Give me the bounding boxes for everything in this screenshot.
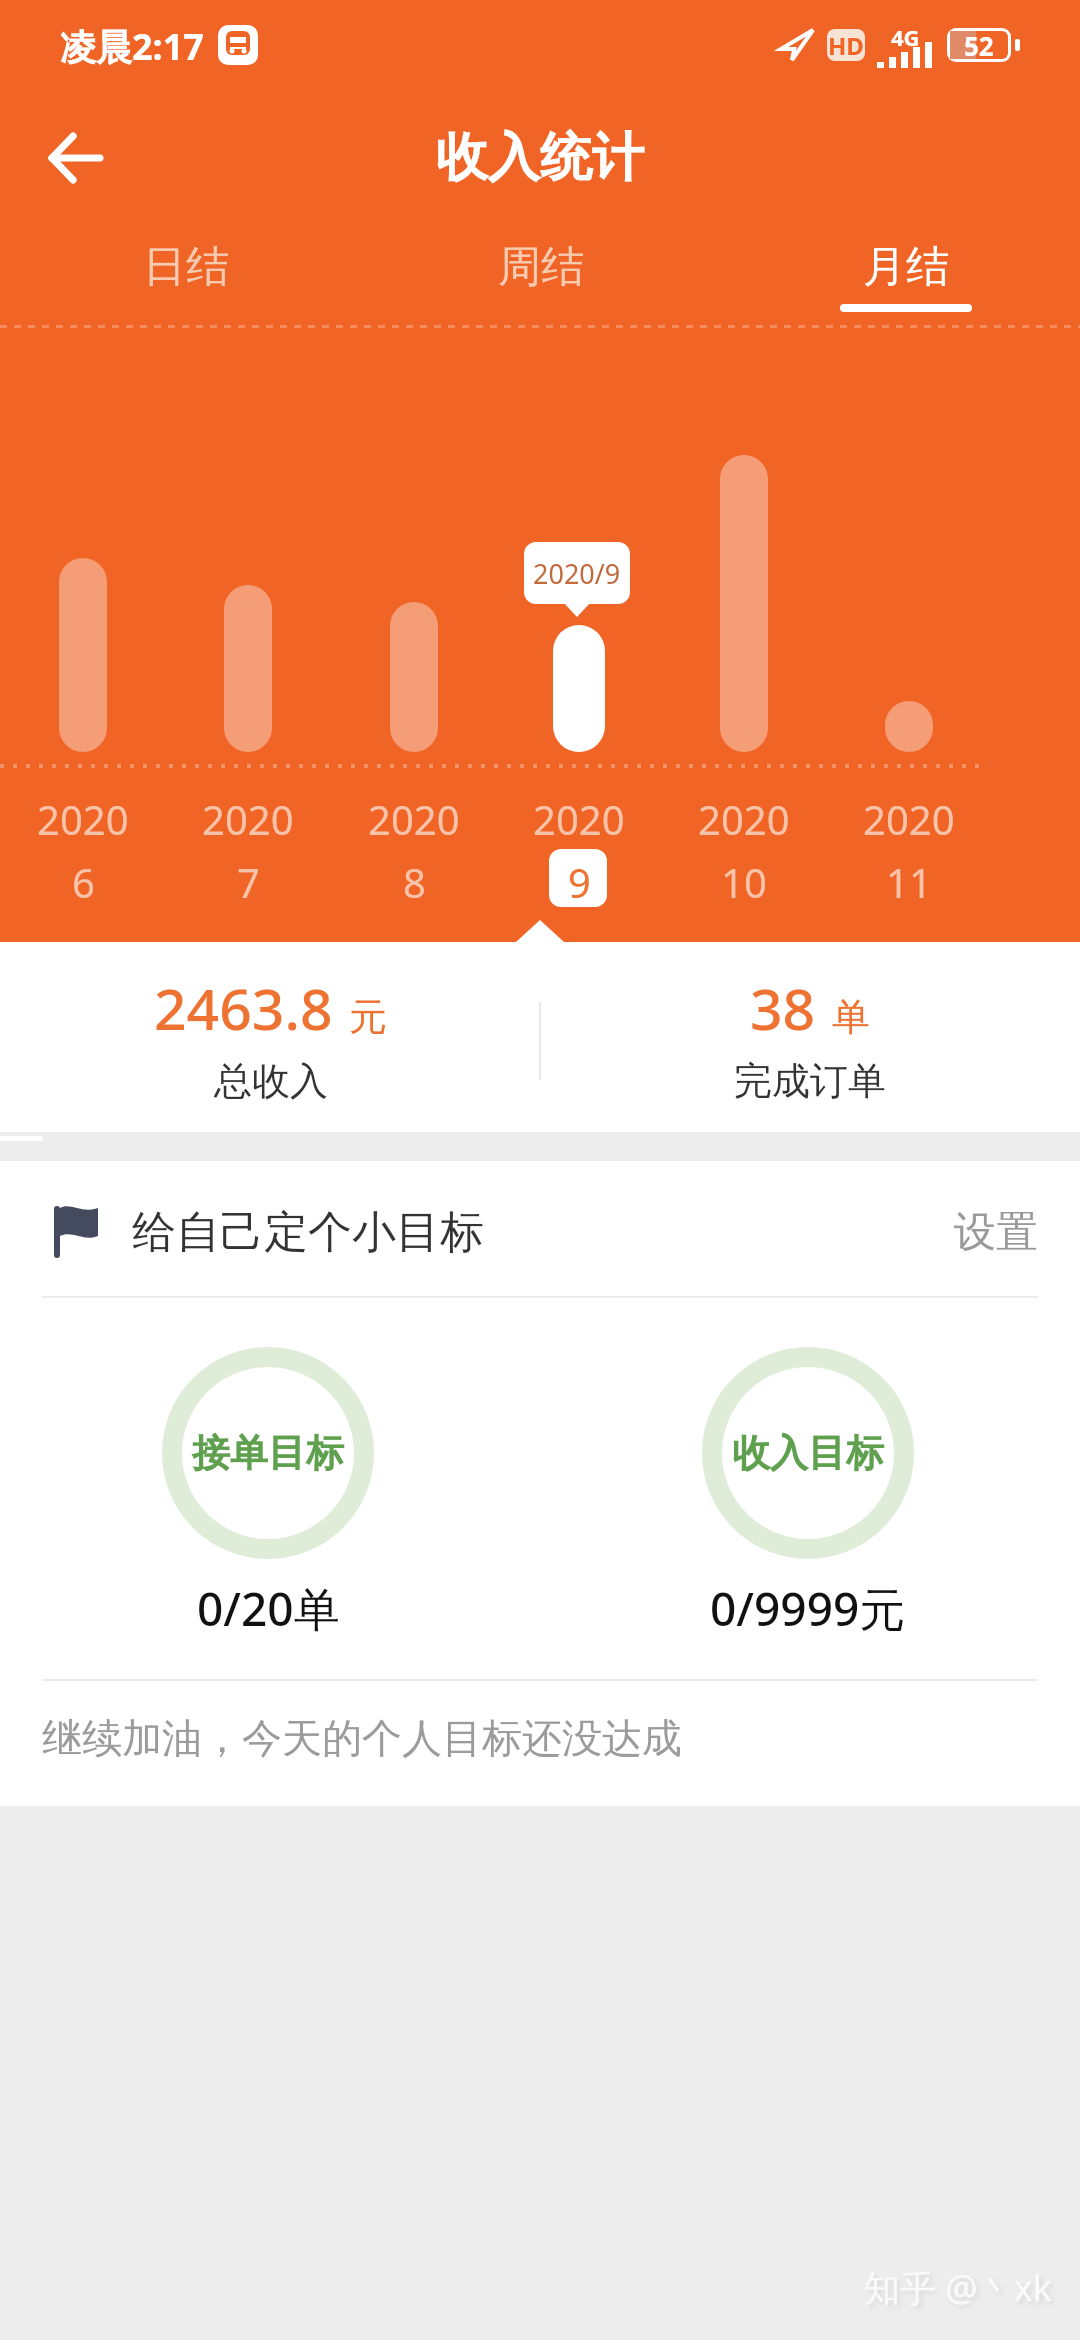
staticText: 接单目标: [192, 1429, 344, 1477]
staticText: 6: [72, 855, 95, 909]
staticText: 10: [721, 855, 767, 909]
staticText: 单: [832, 993, 870, 1041]
staticText: 2020: [368, 792, 460, 846]
staticText: 0/9999元: [710, 1577, 906, 1640]
staticText: HD: [828, 29, 864, 61]
button[interactable]: 日结: [120, 240, 252, 304]
staticText: 收入目标: [732, 1429, 884, 1477]
staticText: 2020: [533, 792, 625, 846]
staticText: 总收入: [214, 1057, 328, 1105]
staticText: 38: [750, 969, 816, 1047]
staticText: 9: [568, 855, 591, 909]
staticText: 8: [403, 855, 426, 909]
button[interactable]: 月结: [840, 240, 972, 312]
staticText: 0/20单: [197, 1577, 340, 1640]
staticText: 日结: [143, 240, 229, 294]
staticText: 月结: [863, 240, 949, 294]
staticText: 52: [964, 28, 994, 62]
staticText: 4G: [891, 22, 920, 52]
staticText: 给自己定个小目标: [132, 1205, 484, 1260]
staticText: 知乎 @丶xk: [864, 2263, 1052, 2312]
staticText: 2020: [863, 792, 955, 846]
staticText: 完成订单: [734, 1057, 886, 1105]
staticText: 2020/9: [533, 555, 621, 592]
staticText: 元: [349, 993, 387, 1041]
staticText: 周结: [498, 240, 584, 294]
button[interactable]: 接单目标: [162, 1347, 374, 1559]
button[interactable]: [48, 133, 104, 183]
staticText: 继续加油，今天的个人目标还没达成: [42, 1713, 682, 1763]
staticText: 2463.8: [154, 969, 333, 1047]
staticText: 2020: [37, 792, 129, 846]
staticText: 2020: [202, 792, 294, 846]
staticText: 设置: [954, 1206, 1038, 1259]
staticText: 2020: [698, 792, 790, 846]
button[interactable]: 收入目标: [702, 1347, 914, 1559]
staticText: 11: [886, 855, 932, 909]
button[interactable]: 周结: [475, 240, 607, 304]
button[interactable]: 设置: [954, 1206, 1038, 1259]
staticText: 收入统计: [436, 125, 644, 191]
staticText: 凌晨2:17: [60, 22, 204, 68]
staticText: 7: [237, 855, 260, 909]
